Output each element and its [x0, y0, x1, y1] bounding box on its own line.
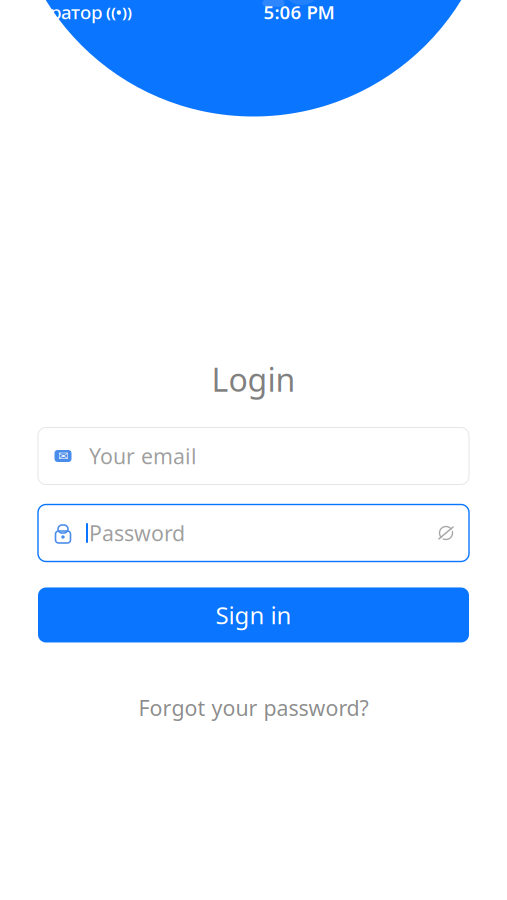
button[interactable]: Password [38, 504, 469, 561]
staticText: Forgot your password? [138, 693, 368, 722]
staticText: Password [89, 519, 185, 547]
button[interactable]: Sign in [38, 587, 469, 642]
staticText: ✉ [58, 449, 68, 463]
staticText: 5:06 PM [263, 0, 334, 24]
button[interactable]: ✉ [38, 427, 469, 484]
staticText: Login [211, 358, 295, 400]
staticText: Sign in [215, 599, 291, 631]
staticText: Your email [89, 442, 197, 470]
button[interactable]: Forgot your password? [122, 687, 384, 728]
staticText: Оператор [14, 0, 102, 24]
staticText: ((•)) [102, 2, 132, 22]
